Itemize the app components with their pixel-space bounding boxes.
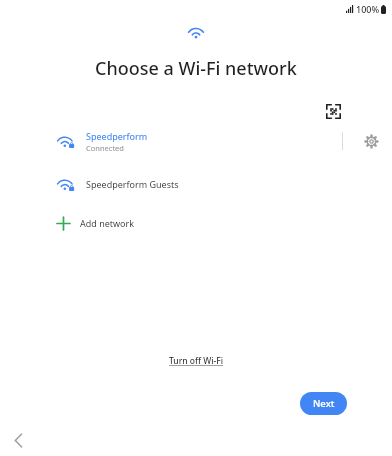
- button[interactable]: Scan QR code: [322, 100, 344, 122]
- staticText: Add network: [80, 217, 135, 229]
- button[interactable]: Next: [300, 392, 347, 415]
- button[interactable]: Speedperform: [0, 124, 392, 158]
- staticText: Choose a Wi-Fi network: [95, 56, 297, 81]
- button[interactable]: Add network: [0, 208, 392, 238]
- button[interactable]: Turn off Wi-Fi: [165, 352, 228, 370]
- staticText: Connected: [86, 143, 124, 153]
- button[interactable]: Network settings: [360, 130, 382, 152]
- button[interactable]: Speedperform Guests: [0, 167, 392, 201]
- button[interactable]: Back: [8, 430, 28, 450]
- staticText: Turn off Wi-Fi: [169, 355, 224, 367]
- staticText: Speedperform: [86, 130, 148, 142]
- staticText: Speedperform Guests: [86, 178, 179, 190]
- staticText: 100%: [356, 3, 380, 15]
- staticText: Next: [313, 397, 335, 410]
